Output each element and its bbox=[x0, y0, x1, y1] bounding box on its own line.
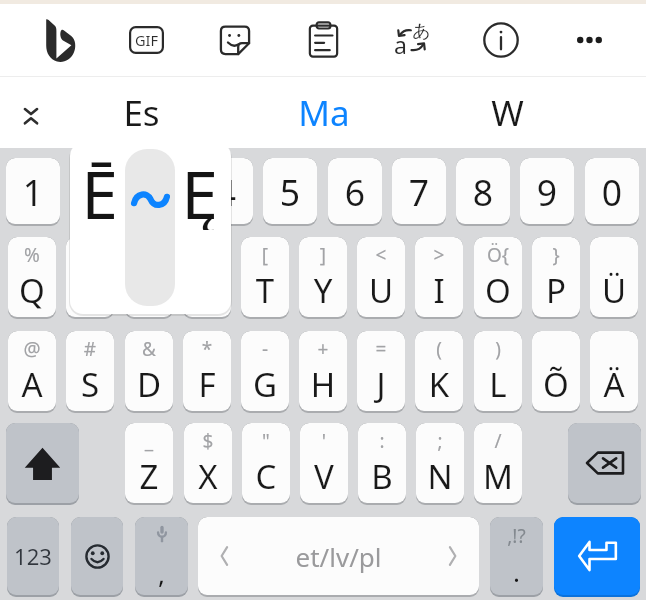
button[interactable]: [ bbox=[241, 237, 289, 317]
staticText: U bbox=[357, 268, 405, 313]
staticText: - bbox=[241, 336, 289, 362]
button[interactable]: / bbox=[474, 423, 522, 503]
button[interactable]: 7 bbox=[392, 158, 446, 224]
button[interactable]: Clipboard bbox=[308, 22, 339, 57]
staticText: # bbox=[66, 336, 114, 362]
button[interactable]: Ü bbox=[590, 237, 638, 317]
button[interactable]: ] bbox=[299, 237, 347, 317]
staticText: $ bbox=[184, 428, 232, 454]
button[interactable]: Info bbox=[483, 22, 519, 58]
staticText: V bbox=[300, 454, 348, 499]
button[interactable]: 123 bbox=[7, 517, 59, 595]
button[interactable]: 9 bbox=[520, 158, 574, 224]
button[interactable]: & bbox=[125, 331, 173, 411]
button[interactable]: Backspace bbox=[568, 423, 641, 503]
staticText: Õ bbox=[532, 362, 580, 407]
button[interactable]: = bbox=[357, 331, 405, 411]
button[interactable]: Ä bbox=[590, 331, 638, 411]
staticText: Q bbox=[8, 268, 56, 313]
button[interactable]: Shift bbox=[6, 423, 79, 503]
button[interactable]: 4 bbox=[199, 158, 253, 224]
button[interactable]: ' bbox=[300, 423, 348, 503]
staticText: C bbox=[242, 454, 290, 499]
staticText: 5 bbox=[263, 168, 317, 216]
staticText: W bbox=[66, 268, 114, 313]
button[interactable] bbox=[125, 159, 175, 241]
button[interactable]: 6 bbox=[328, 158, 382, 224]
staticText: > bbox=[415, 242, 463, 268]
button[interactable]: Es bbox=[95, 88, 187, 138]
button[interactable]: = bbox=[183, 237, 231, 317]
button[interactable]: 5 bbox=[263, 158, 317, 224]
staticText: Ma bbox=[298, 89, 350, 137]
staticText: Ä bbox=[590, 362, 638, 407]
button[interactable]: _ bbox=[125, 423, 173, 503]
staticText: \ bbox=[66, 242, 114, 268]
button[interactable]: Enter bbox=[554, 517, 640, 595]
button[interactable]: < bbox=[357, 237, 405, 317]
button[interactable]: | bbox=[125, 237, 173, 317]
button[interactable]: : bbox=[358, 423, 406, 503]
button[interactable]: 3 bbox=[135, 158, 189, 224]
button[interactable]: + bbox=[299, 331, 347, 411]
button[interactable]: Ö{ bbox=[474, 237, 522, 317]
staticText: S bbox=[66, 362, 114, 407]
staticText: : bbox=[358, 428, 406, 454]
button[interactable]: " bbox=[242, 423, 290, 503]
staticText: ; bbox=[416, 428, 464, 454]
button[interactable]: ,!? bbox=[490, 517, 543, 595]
staticText: ' bbox=[300, 428, 348, 454]
staticText: J bbox=[357, 362, 405, 407]
staticText: et/lv/pl bbox=[295, 539, 382, 574]
staticText: 1 bbox=[6, 168, 60, 216]
button[interactable]: Ę bbox=[174, 148, 224, 230]
staticText: , bbox=[135, 556, 188, 591]
button[interactable]: Space bbox=[198, 517, 479, 595]
button[interactable]: Collapse bbox=[9, 93, 53, 137]
button[interactable]: 8 bbox=[456, 158, 510, 224]
staticText: L bbox=[474, 362, 522, 407]
button[interactable]: Õ bbox=[532, 331, 580, 411]
staticText: GIF bbox=[135, 30, 158, 50]
button[interactable]: 1 bbox=[6, 158, 60, 224]
button[interactable]: Ma bbox=[278, 88, 370, 138]
staticText: Ę bbox=[181, 148, 218, 230]
staticText: % bbox=[8, 242, 56, 268]
staticText: K bbox=[415, 362, 463, 407]
button[interactable]: @ bbox=[8, 331, 56, 411]
button[interactable]: Stickers bbox=[219, 24, 251, 56]
button[interactable]: Bing bbox=[45, 19, 75, 63]
button[interactable]: Translate bbox=[395, 23, 428, 56]
button[interactable]: ; bbox=[416, 423, 464, 503]
button[interactable]: ) bbox=[474, 331, 522, 411]
button[interactable]: Ē bbox=[74, 148, 124, 230]
staticText: [ bbox=[241, 242, 289, 268]
button[interactable] bbox=[125, 149, 175, 306]
staticText: 9 bbox=[520, 168, 574, 216]
button[interactable]: Voice input bbox=[135, 517, 188, 595]
button[interactable]: 2 bbox=[70, 158, 124, 224]
staticText: N bbox=[416, 454, 464, 499]
staticText: " bbox=[242, 428, 290, 454]
staticText: 0 bbox=[585, 168, 639, 216]
staticText: O bbox=[474, 268, 522, 313]
button[interactable]: } bbox=[532, 237, 580, 317]
button[interactable]: 0 bbox=[585, 158, 639, 224]
button[interactable]: More options bbox=[575, 32, 604, 48]
button[interactable]: # bbox=[66, 331, 114, 411]
button[interactable]: > bbox=[415, 237, 463, 317]
button[interactable]: $ bbox=[184, 423, 232, 503]
staticText: & bbox=[125, 336, 173, 362]
staticText: G bbox=[241, 362, 289, 407]
button[interactable]: ( bbox=[415, 331, 463, 411]
staticText: * bbox=[183, 336, 231, 362]
button[interactable]: % bbox=[8, 237, 56, 317]
staticText: Z bbox=[125, 454, 173, 499]
button[interactable]: GIF bbox=[129, 26, 164, 54]
button[interactable]: W bbox=[461, 88, 553, 138]
button[interactable]: - bbox=[241, 331, 289, 411]
button[interactable]: Emoji bbox=[71, 517, 123, 595]
button[interactable]: * bbox=[183, 331, 231, 411]
button[interactable]: \ bbox=[66, 237, 114, 317]
